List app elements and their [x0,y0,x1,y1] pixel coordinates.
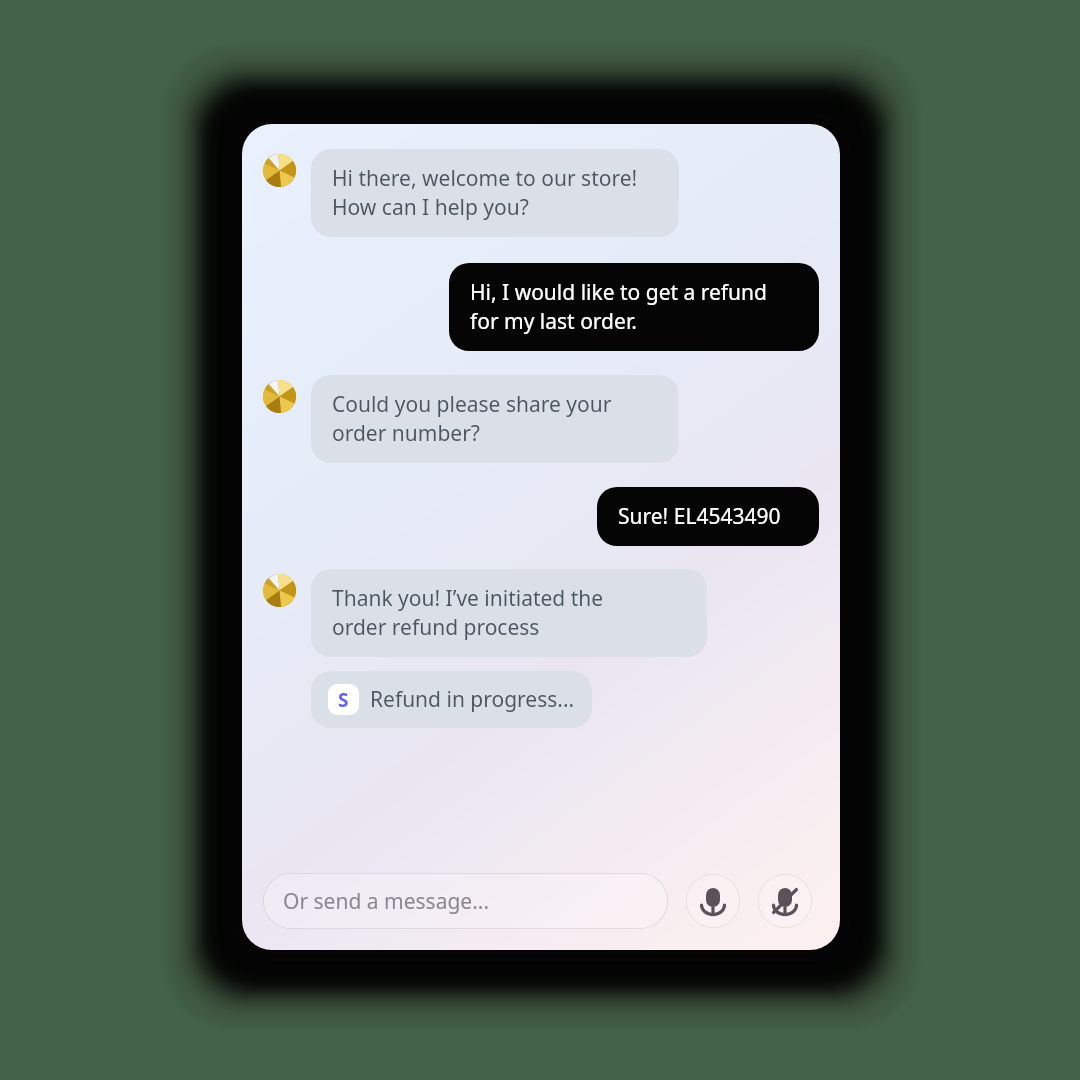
staticText: Sure! EL4543490 [618,502,781,531]
button[interactable]: Mute voice [758,874,812,928]
button[interactable]: Voice input [686,874,740,928]
staticText: S [338,687,349,713]
staticText: Or send a message... [283,887,490,916]
button[interactable]: Sure! EL4543490 [597,487,819,546]
staticText: for my last order. [470,307,637,336]
button[interactable]: Hi there, welcome to our store! [311,149,679,237]
staticText: Thank you! I’ve initiated the [332,584,604,613]
button[interactable]: S [311,671,592,728]
staticText: order refund process [332,613,540,642]
button[interactable]: Hi, I would like to get a refund [449,263,819,351]
button[interactable]: Or send a message... [263,873,668,929]
button[interactable]: Could you please share your [311,375,679,463]
staticText: Could you please share your [332,390,612,419]
staticText: order number? [332,419,480,448]
staticText: Hi, I would like to get a refund [470,278,767,307]
button[interactable]: Thank you! I’ve initiated the [311,569,707,657]
staticText: Hi there, welcome to our store! [332,164,638,193]
staticText: Refund in progress... [370,685,575,714]
staticText: How can I help you? [332,193,529,222]
